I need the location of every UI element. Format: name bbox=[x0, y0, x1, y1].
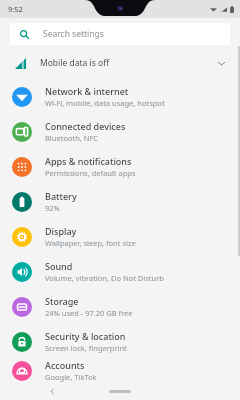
staticText: Display bbox=[45, 225, 77, 237]
staticText: Wi-Fi, mobile, data usage, hotspot bbox=[45, 98, 165, 108]
button[interactable]: Network & internet bbox=[0, 79, 240, 114]
button[interactable]: Display bbox=[0, 219, 240, 254]
staticText: 9:52 bbox=[8, 4, 23, 14]
button[interactable]: Mobile data is off bbox=[0, 50, 240, 76]
staticText: Wallpaper, sleep, font size bbox=[45, 238, 136, 248]
staticText: Mobile data is off bbox=[40, 57, 217, 69]
button[interactable]: Search settings bbox=[10, 23, 230, 45]
staticText: Network & internet bbox=[45, 85, 129, 97]
button[interactable]: Back bbox=[45, 384, 59, 398]
staticText: Sound bbox=[45, 260, 73, 272]
staticText: Search settings bbox=[43, 28, 104, 40]
button[interactable]: Storage bbox=[0, 289, 240, 324]
button[interactable]: Security & location bbox=[0, 324, 240, 359]
staticText: Screen lock, fingerprint bbox=[45, 343, 127, 353]
staticText: Google, TikTok bbox=[45, 372, 97, 382]
button[interactable]: Apps & notifications bbox=[0, 149, 240, 184]
button[interactable]: Connected devices bbox=[0, 114, 240, 149]
staticText: Volume, vibration, Do Not Disturb bbox=[45, 273, 164, 283]
button[interactable]: Sound bbox=[0, 254, 240, 289]
button[interactable]: Home bbox=[105, 386, 135, 396]
staticText: 24% used - 97.20 GB free bbox=[45, 308, 133, 318]
staticText: Security & location bbox=[45, 330, 126, 342]
button[interactable]: Battery bbox=[0, 184, 240, 219]
button[interactable]: Accounts bbox=[0, 359, 240, 382]
staticText: Storage bbox=[45, 295, 79, 307]
staticText: Connected devices bbox=[45, 120, 126, 132]
staticText: 92% bbox=[45, 203, 60, 213]
staticText: Bluetooth, NFC bbox=[45, 133, 99, 143]
staticText: Accounts bbox=[45, 359, 85, 371]
staticText: Battery bbox=[45, 190, 77, 202]
staticText: Permissions, default apps bbox=[45, 168, 136, 178]
staticText: Apps & notifications bbox=[45, 155, 132, 167]
